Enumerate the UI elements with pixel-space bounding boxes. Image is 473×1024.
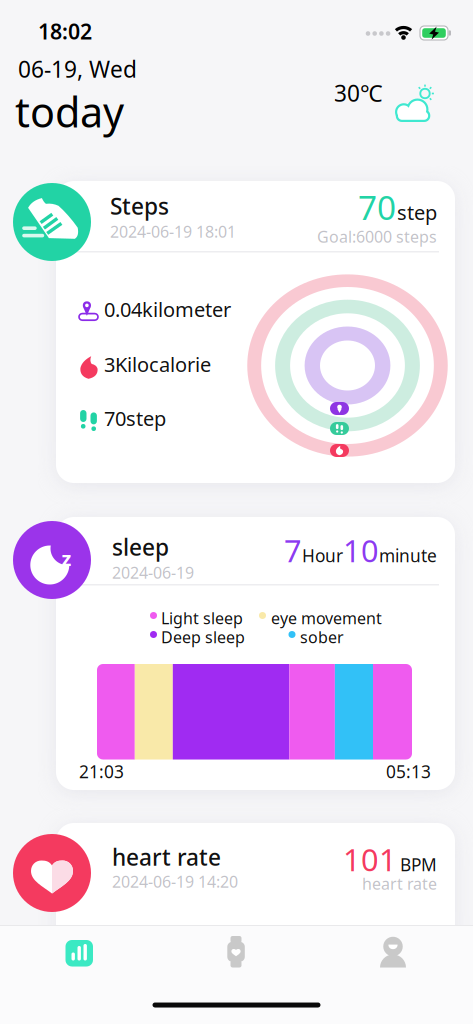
staticText: sober (300, 626, 344, 648)
staticText: 70 (358, 185, 396, 229)
staticText: 101 (343, 839, 397, 880)
staticText: 2024-06-19 (112, 562, 194, 583)
staticText: Hour (302, 544, 343, 567)
staticText: Deep sleep (161, 626, 245, 648)
staticText: Steps (110, 191, 169, 221)
button[interactable]: Activity (14, 925, 144, 981)
staticText: 7 (284, 530, 302, 571)
button[interactable]: Steps details (56, 181, 455, 483)
staticText: 06-19, Wed (18, 54, 137, 84)
staticText: heart rate (112, 842, 221, 872)
staticText: 2024-06-19 18:01 (110, 221, 236, 242)
staticText: 3Kilocalorie (104, 351, 211, 378)
staticText: 21:03 (79, 760, 124, 783)
staticText: step (397, 199, 437, 226)
staticText: sleep (112, 532, 169, 562)
staticText: 30℃ (334, 78, 383, 108)
button[interactable]: Sleep details (56, 517, 455, 790)
button[interactable]: Heart rate details (56, 823, 455, 953)
staticText: 18:02 (38, 17, 92, 45)
button[interactable]: Profile (328, 925, 458, 981)
staticText: 0.04kilometer (104, 296, 231, 323)
staticText: today (15, 84, 124, 139)
staticText: 05:13 (386, 760, 431, 783)
button[interactable]: Watch (171, 925, 301, 981)
staticText: eye movement (271, 607, 382, 629)
staticText: 10 (343, 530, 379, 571)
staticText: minute (379, 544, 437, 567)
staticText: Goal:6000 steps (317, 226, 437, 247)
staticText: 2024-06-19 14:20 (112, 871, 238, 892)
staticText: heart rate (362, 873, 437, 894)
staticText: 70step (104, 405, 166, 432)
staticText: Light sleep (161, 607, 243, 629)
staticText: BPM (400, 853, 437, 876)
staticText: z (61, 545, 71, 572)
